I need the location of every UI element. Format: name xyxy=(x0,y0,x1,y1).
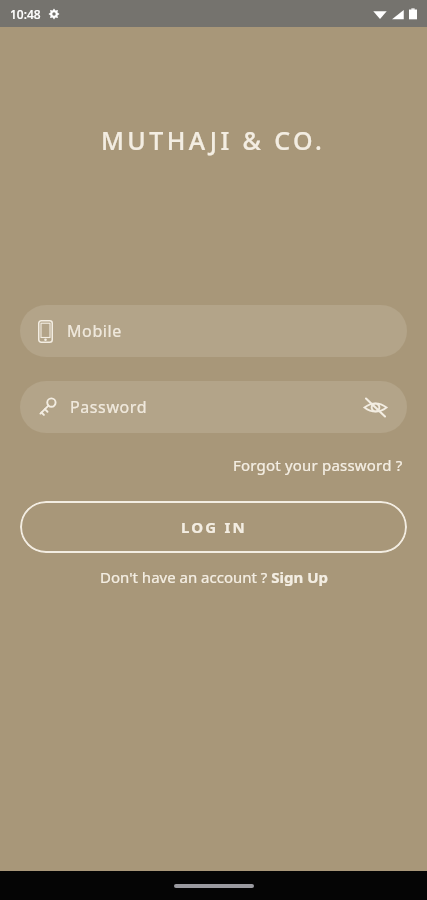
staticText: Password xyxy=(70,396,355,418)
staticText: Forgot your password ? xyxy=(233,455,403,475)
staticText: LOG IN xyxy=(181,517,247,537)
button[interactable]: Password xyxy=(20,381,407,433)
staticText: Don't have an account ? Sign Up xyxy=(100,567,328,587)
staticText: MUTHAJI & CO. xyxy=(101,123,326,157)
staticText: Mobile xyxy=(67,320,122,342)
button[interactable]: Show password xyxy=(355,387,395,427)
button[interactable]: LOG IN xyxy=(20,501,407,553)
staticText: 10:48 xyxy=(10,6,41,22)
button[interactable]: Mobile xyxy=(20,305,407,357)
button[interactable]: Don't have an account ? Sign Up xyxy=(94,563,334,591)
button[interactable]: Forgot your password ? xyxy=(229,451,407,479)
